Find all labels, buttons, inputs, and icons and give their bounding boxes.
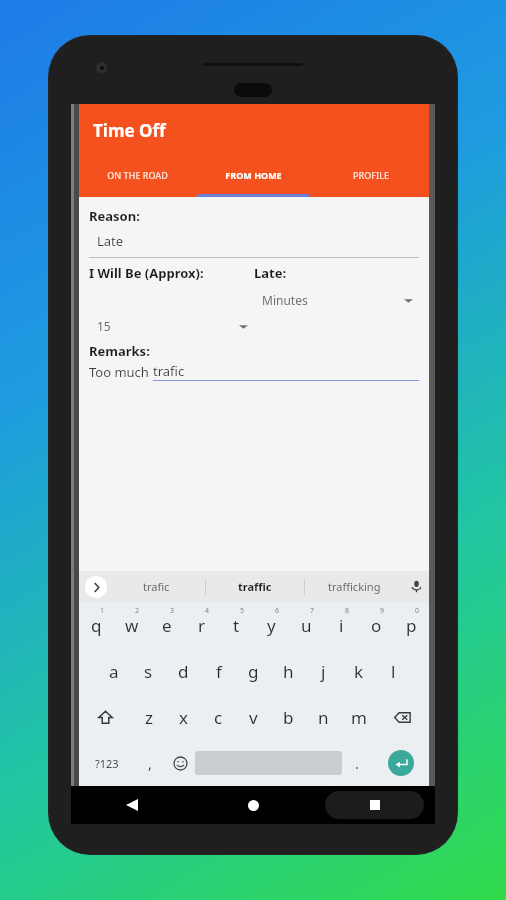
staticText: trafficking xyxy=(328,579,381,594)
staticText: 2 xyxy=(135,606,140,616)
staticText: c xyxy=(214,706,223,729)
button[interactable]: a xyxy=(96,648,131,694)
staticText: u xyxy=(301,614,312,637)
button[interactable]: q xyxy=(79,602,114,648)
button[interactable]: . xyxy=(342,740,372,786)
staticText: PROFILE xyxy=(353,169,389,181)
staticText: p xyxy=(406,614,417,637)
staticText: ON THE ROAD xyxy=(107,169,168,181)
button[interactable]: p xyxy=(394,602,429,648)
button[interactable]: Back xyxy=(71,786,193,824)
staticText: 8 xyxy=(345,606,350,616)
staticText: t xyxy=(233,614,240,637)
staticText: v xyxy=(249,706,258,729)
staticText: 5 xyxy=(240,606,245,616)
button[interactable]: , xyxy=(135,740,165,786)
staticText: h xyxy=(283,660,294,683)
staticText: x xyxy=(179,706,188,729)
staticText: a xyxy=(109,660,119,683)
staticText: 1 xyxy=(100,606,105,616)
staticText: l xyxy=(391,660,396,683)
staticText: d xyxy=(178,660,189,683)
button[interactable]: t xyxy=(219,602,254,648)
button[interactable]: Voice input xyxy=(403,571,429,602)
button[interactable]: f xyxy=(201,648,236,694)
staticText: b xyxy=(283,706,294,729)
button[interactable]: Emoji xyxy=(165,740,195,786)
button[interactable]: ON THE ROAD xyxy=(79,156,195,197)
staticText: k xyxy=(354,660,364,683)
button[interactable]: z xyxy=(131,694,166,740)
staticText: trafic xyxy=(143,579,170,594)
button[interactable]: j xyxy=(306,648,341,694)
button[interactable]: Recents xyxy=(314,786,435,824)
staticText: Too much xyxy=(89,363,153,381)
button[interactable]: o xyxy=(359,602,394,648)
button[interactable]: Late xyxy=(89,232,419,258)
button[interactable]: s xyxy=(131,648,166,694)
staticText: s xyxy=(144,660,153,683)
staticText: . xyxy=(355,754,359,773)
staticText: , xyxy=(148,754,152,773)
button[interactable]: i xyxy=(324,602,359,648)
staticText: 15 xyxy=(97,318,239,334)
staticText: q xyxy=(91,614,102,637)
staticText: i xyxy=(339,614,344,637)
staticText: Remarks: xyxy=(89,342,150,360)
button[interactable]: d xyxy=(166,648,201,694)
button[interactable]: u xyxy=(289,602,324,648)
button[interactable]: h xyxy=(271,648,306,694)
button[interactable]: y xyxy=(254,602,289,648)
button[interactable]: Too much xyxy=(89,362,419,381)
staticText: z xyxy=(145,706,153,729)
staticText: Minutes xyxy=(262,292,404,308)
staticText: 9 xyxy=(380,606,385,616)
button[interactable]: traffic xyxy=(206,571,304,602)
button[interactable]: FROM HOME xyxy=(195,156,312,197)
staticText: g xyxy=(248,660,259,683)
staticText: m xyxy=(351,706,367,729)
staticText: 3 xyxy=(170,606,175,616)
staticText: 4 xyxy=(205,606,210,616)
staticText: FROM HOME xyxy=(225,169,282,181)
button[interactable]: l xyxy=(376,648,411,694)
button[interactable]: Expand suggestions xyxy=(85,576,107,598)
staticText: j xyxy=(321,660,326,683)
staticText: trafic xyxy=(153,362,185,380)
button[interactable]: Minutes xyxy=(254,292,419,308)
button[interactable]: m xyxy=(341,694,376,740)
staticText: n xyxy=(318,706,329,729)
button[interactable]: Home xyxy=(193,786,314,824)
button[interactable]: n xyxy=(306,694,341,740)
button[interactable]: x xyxy=(166,694,201,740)
button[interactable]: w xyxy=(114,602,149,648)
button[interactable]: Shift xyxy=(79,694,131,740)
staticText: r xyxy=(198,614,206,637)
button[interactable]: Enter xyxy=(372,740,429,786)
button[interactable]: c xyxy=(201,694,236,740)
staticText: o xyxy=(371,614,382,637)
button[interactable]: 15 xyxy=(89,318,254,334)
staticText: w xyxy=(125,614,139,637)
button[interactable]: g xyxy=(236,648,271,694)
button[interactable]: trafic xyxy=(107,571,205,602)
button[interactable]: Backspace xyxy=(376,694,429,740)
staticText: e xyxy=(162,614,172,637)
button[interactable]: v xyxy=(236,694,271,740)
button[interactable]: trafficking xyxy=(305,571,403,602)
staticText: y xyxy=(267,614,276,637)
button[interactable]: r xyxy=(184,602,219,648)
button[interactable]: PROFILE xyxy=(312,156,429,197)
staticText: Reason: xyxy=(89,207,140,225)
button[interactable]: e xyxy=(149,602,184,648)
button[interactable]: b xyxy=(271,694,306,740)
staticText: Late xyxy=(97,232,124,250)
staticText: Time Off xyxy=(93,119,166,142)
staticText: 6 xyxy=(275,606,280,616)
button[interactable]: k xyxy=(341,648,376,694)
staticText: f xyxy=(216,660,222,683)
staticText: Late: xyxy=(254,264,419,282)
button[interactable]: ?123 xyxy=(79,740,135,786)
staticText: traffic xyxy=(238,579,272,594)
